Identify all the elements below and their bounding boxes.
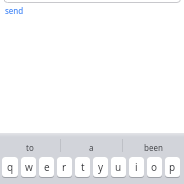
button[interactable]: send <box>5 5 24 16</box>
staticText: been <box>144 142 163 153</box>
button[interactable]: u <box>111 157 126 178</box>
staticText: e <box>44 160 50 174</box>
staticText: o <box>151 160 158 174</box>
button[interactable]: o <box>147 157 162 178</box>
button[interactable]: a <box>61 137 122 157</box>
button[interactable]: w <box>21 157 36 178</box>
button[interactable]: r <box>57 157 72 178</box>
button[interactable]: e <box>39 157 54 178</box>
staticText: u <box>115 160 122 174</box>
button[interactable]: t <box>75 157 90 178</box>
button[interactable]: to <box>0 137 60 157</box>
button[interactable]: y <box>93 157 108 178</box>
button[interactable]: p <box>165 157 180 178</box>
staticText: y <box>98 160 104 174</box>
staticText: w <box>25 160 33 174</box>
button[interactable]: been <box>123 137 184 157</box>
staticText: a <box>89 142 94 153</box>
staticText: i <box>135 160 138 174</box>
staticText: p <box>169 160 176 174</box>
staticText: q <box>7 160 14 174</box>
staticText: r <box>62 160 67 174</box>
staticText: to <box>26 142 34 153</box>
button[interactable]: q <box>2 157 18 178</box>
staticText: send <box>5 5 24 16</box>
button[interactable]: i <box>129 157 144 178</box>
staticText: t <box>81 160 85 174</box>
